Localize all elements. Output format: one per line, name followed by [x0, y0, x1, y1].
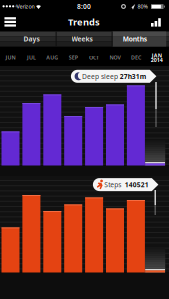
- button[interactable]: [4, 17, 16, 27]
- staticText: Verizon: [16, 3, 34, 10]
- staticText: Deep sleep: [82, 72, 118, 81]
- staticText: 8:00: [77, 2, 91, 11]
- staticText: NOV: [109, 54, 120, 61]
- staticText: Months: [123, 35, 147, 43]
- staticText: JAN: [152, 52, 162, 59]
- staticText: OCT: [89, 54, 99, 61]
- staticText: 140521: [125, 180, 149, 189]
- button[interactable]: Weeks: [54, 31, 109, 46]
- staticText: Trends: [68, 16, 100, 28]
- staticText: SEP: [69, 54, 78, 61]
- button[interactable]: Deep sleep: [71, 70, 156, 83]
- staticText: JUL: [27, 54, 36, 61]
- staticText: Steps: [104, 180, 121, 189]
- staticText: Weeks: [71, 35, 92, 43]
- staticText: DEC: [131, 54, 141, 61]
- button[interactable]: Steps: [93, 178, 158, 191]
- staticText: JUN: [5, 54, 15, 61]
- staticText: 80%: [137, 3, 147, 10]
- button[interactable]: Months: [108, 31, 162, 46]
- button[interactable]: Days: [4, 31, 59, 46]
- button[interactable]: [151, 18, 161, 27]
- staticText: 2014: [151, 56, 163, 64]
- staticText: AUG: [46, 54, 58, 61]
- staticText: Days: [23, 35, 39, 43]
- staticText: 27h31m: [120, 72, 147, 81]
